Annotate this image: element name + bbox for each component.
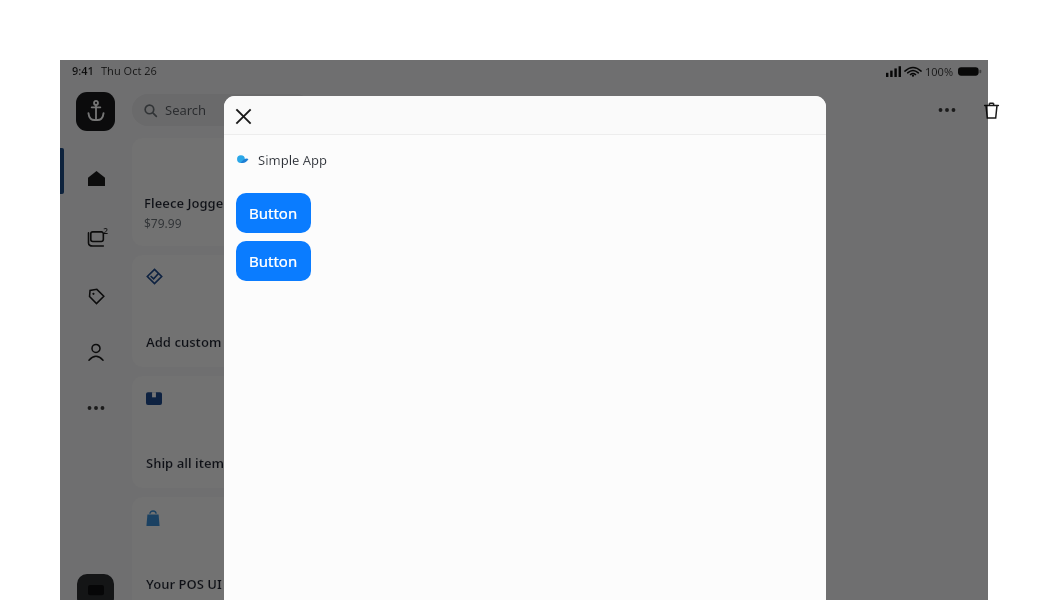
staticText: Button [249, 251, 298, 271]
button[interactable]: Search [132, 94, 312, 126]
staticText: Button [249, 203, 298, 223]
button[interactable]: Home [78, 160, 114, 196]
button[interactable]: Delete [976, 95, 1006, 125]
button[interactable]: Fleece Jogger [132, 138, 312, 246]
staticText: Fleece Jogger [144, 194, 229, 212]
button[interactable]: Button [236, 193, 311, 233]
staticText: Thu Oct 26 [101, 63, 157, 78]
staticText: Your POS UI [146, 575, 222, 593]
button[interactable]: Close [230, 103, 256, 129]
button[interactable]: Button [236, 241, 311, 281]
staticText: Add custom [146, 333, 222, 351]
button[interactable]: Products [78, 278, 114, 314]
button[interactable]: More options [932, 95, 962, 125]
button[interactable]: Ship all items [132, 376, 312, 488]
button[interactable]: Your POS UI [132, 497, 312, 600]
button[interactable]: More [78, 390, 114, 426]
staticText: Search [165, 101, 207, 119]
staticText: $79.99 [144, 215, 182, 231]
button[interactable]: Orders [78, 220, 114, 256]
button[interactable]: Add custom [132, 255, 312, 367]
button[interactable]: Customers [78, 334, 114, 370]
staticText: 2 [103, 224, 109, 236]
staticText: Simple App [258, 151, 328, 169]
staticText: 100% [925, 64, 954, 79]
staticText: Ship all items [146, 454, 231, 472]
button[interactable]: Shop home [76, 92, 115, 131]
button[interactable]: Register [77, 574, 114, 600]
staticText: 9:41 [72, 63, 94, 78]
